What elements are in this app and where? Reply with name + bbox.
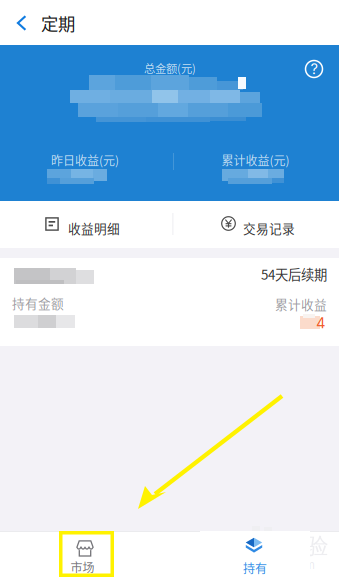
staticText: 持有 [243,559,267,577]
staticText: 收益明细 [68,219,120,237]
staticText: 交易记录 [243,219,295,237]
staticText: 总金额(元) [144,60,196,76]
staticText: Baidu 经验 [217,532,329,560]
staticText: 累计收益(元) [221,151,289,169]
staticText: 持有金额 [12,294,64,312]
button[interactable]: 54天后续期 [0,258,339,346]
button[interactable]: 帮助 [303,58,325,80]
staticText: 定期 [41,10,75,36]
staticText: 54天后续期 [261,264,327,284]
staticText: 昨日收益(元) [51,151,119,169]
button[interactable]: 持有 [200,531,310,581]
staticText: 累计收益 [275,295,327,313]
staticText: ? [310,60,317,78]
staticText: jingyan.baidu.com [217,558,315,572]
button[interactable]: 返回 [3,0,43,45]
button[interactable]: 市场 [59,531,114,581]
staticText: 市场 [70,558,94,576]
staticText: 4 [316,314,325,332]
button[interactable]: 收益明细 [0,201,169,248]
button[interactable]: 交易记录 [170,201,339,248]
